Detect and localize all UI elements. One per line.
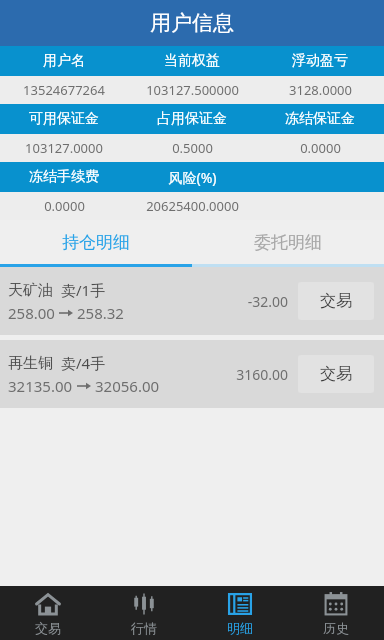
staticText: 258.00 — [8, 303, 55, 323]
staticText: 103127.0000 — [25, 139, 103, 157]
staticText: 再生铜 — [8, 354, 53, 373]
button[interactable]: 明细 — [192, 586, 288, 640]
staticText: 天矿油 — [8, 281, 53, 300]
staticText: 13524677264 — [23, 81, 105, 99]
staticText: 持仓明细 — [62, 232, 130, 253]
staticText: 用户信息 — [150, 10, 234, 36]
button[interactable]: 持仓明细 — [0, 220, 192, 264]
staticText: 0.0000 — [300, 139, 341, 157]
staticText: 行情 — [131, 620, 157, 636]
staticText: 当前权益 — [164, 52, 220, 70]
staticText: 委托明细 — [254, 232, 322, 253]
staticText: 卖/1手 — [61, 280, 106, 300]
staticText: 交易 — [35, 620, 61, 636]
staticText: 冻结保证金 — [285, 110, 355, 128]
button[interactable]: 交易 — [0, 586, 96, 640]
staticText: 用户名 — [43, 52, 85, 70]
button[interactable]: 天矿油 — [0, 267, 384, 335]
button[interactable]: 交易 — [298, 355, 374, 393]
button[interactable]: 历史 — [288, 586, 384, 640]
staticText: 占用保证金 — [157, 110, 227, 128]
staticText: 3160.00 — [214, 365, 288, 384]
staticText: 风险(%) — [168, 168, 217, 187]
staticText: 冻结手续费 — [29, 168, 99, 186]
staticText: 交易 — [320, 364, 352, 384]
staticText: 0.5000 — [172, 139, 213, 157]
staticText: -32.00 — [214, 292, 288, 311]
button[interactable]: 委托明细 — [192, 220, 384, 264]
staticText: 3128.0000 — [289, 81, 352, 99]
button[interactable]: 交易 — [298, 282, 374, 320]
staticText: 可用保证金 — [29, 110, 99, 128]
staticText: 32056.00 — [95, 376, 160, 396]
staticText: 0.0000 — [44, 197, 85, 215]
button[interactable]: 再生铜 — [0, 340, 384, 408]
staticText: 交易 — [320, 291, 352, 311]
staticText: 卖/4手 — [61, 353, 106, 373]
button[interactable]: 行情 — [96, 586, 192, 640]
staticText: 258.32 — [77, 303, 124, 323]
staticText: 历史 — [323, 620, 349, 636]
staticText: 32135.00 — [8, 376, 73, 396]
staticText: 103127.500000 — [146, 81, 239, 99]
staticText: 浮动盈亏 — [292, 52, 348, 70]
staticText: 20625400.0000 — [146, 197, 239, 215]
staticText: 明细 — [227, 620, 253, 636]
